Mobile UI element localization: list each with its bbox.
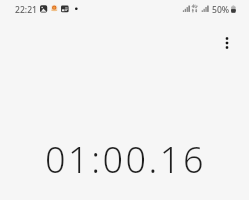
- staticText: 01:00.16: [1, 135, 249, 181]
- staticText: 50%: [212, 4, 230, 16]
- button[interactable]: 01:00.16: [0, 128, 249, 174]
- staticText: 22:21: [15, 4, 38, 16]
- button[interactable]: More options: [211, 27, 243, 59]
